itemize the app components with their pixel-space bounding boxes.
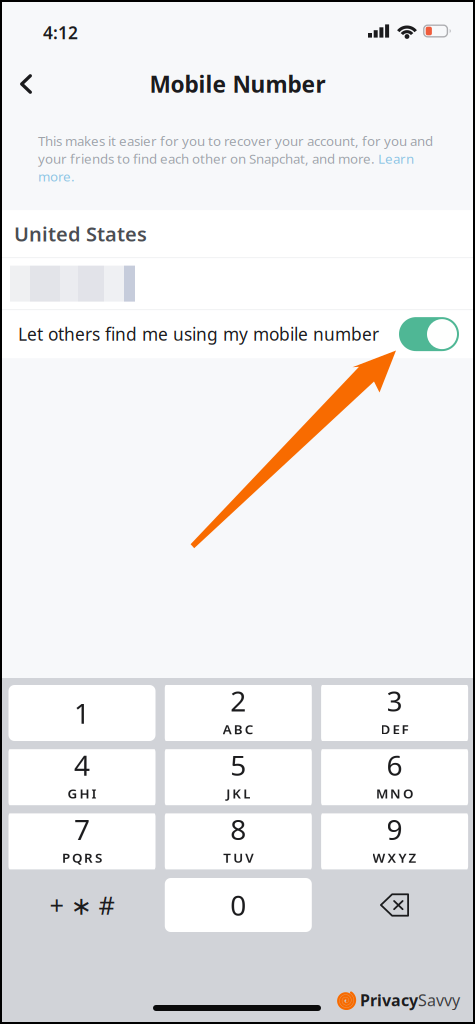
button[interactable]: 9 bbox=[321, 810, 468, 872]
staticText: M N O bbox=[376, 784, 413, 802]
staticText: 6 bbox=[387, 746, 403, 783]
staticText: 1 bbox=[74, 694, 90, 732]
button[interactable]: Phone number bbox=[0, 258, 475, 309]
staticText: Let others find me using my mobile numbe… bbox=[18, 323, 379, 346]
staticText: 8 bbox=[230, 810, 246, 848]
staticText: 4 bbox=[74, 746, 90, 783]
button[interactable]: 4 bbox=[8, 746, 155, 808]
button[interactable]: 0 bbox=[165, 878, 312, 932]
button[interactable]: Plus, star, pound bbox=[8, 878, 155, 932]
staticText: 3 bbox=[387, 682, 403, 719]
staticText: 9 bbox=[387, 810, 403, 848]
staticText: J K L bbox=[226, 784, 250, 802]
button[interactable]: 8 bbox=[165, 810, 312, 872]
button[interactable]: 2 bbox=[165, 682, 312, 744]
staticText: + ∗ # bbox=[49, 888, 114, 922]
staticText: T U V bbox=[223, 849, 253, 866]
staticText: D E F bbox=[381, 720, 409, 738]
button[interactable]: 3 bbox=[321, 682, 468, 744]
staticText: P Q R S bbox=[62, 849, 102, 866]
staticText: This makes it easier for you to recover … bbox=[38, 132, 433, 185]
staticText: G H I bbox=[67, 784, 96, 802]
staticText: W X Y Z bbox=[373, 849, 417, 866]
staticText: 2 bbox=[230, 682, 246, 719]
staticText: 0 bbox=[230, 886, 246, 924]
staticText: Savvy bbox=[418, 989, 460, 1011]
button[interactable]: Back bbox=[4, 62, 48, 106]
button[interactable]: 5 bbox=[165, 746, 312, 808]
staticText: 7 bbox=[74, 810, 90, 848]
staticText: 4:12 bbox=[43, 21, 78, 44]
button[interactable]: Delete bbox=[321, 878, 468, 932]
staticText: Privacy bbox=[360, 989, 418, 1011]
staticText: Mobile Number bbox=[149, 69, 325, 99]
button[interactable]: 1 bbox=[8, 685, 155, 741]
button[interactable]: 7 bbox=[8, 810, 155, 872]
button[interactable]: Let others find me using my mobile numbe… bbox=[0, 310, 475, 358]
button[interactable]: 6 bbox=[321, 746, 468, 808]
staticText: A B C bbox=[223, 720, 254, 738]
staticText: United States bbox=[14, 220, 147, 247]
staticText: 5 bbox=[230, 746, 246, 783]
